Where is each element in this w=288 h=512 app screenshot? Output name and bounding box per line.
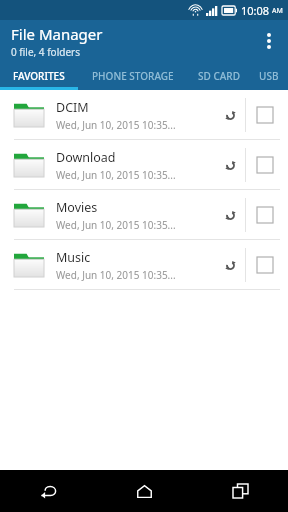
staticText: FAVORITES [13,69,65,83]
staticText: Wed, Jun 10, 2015 10:35... [56,118,176,132]
button[interactable]: Download [0,140,288,190]
staticText: 10:08 [241,3,270,18]
staticText: Wed, Jun 10, 2015 10:35... [56,268,176,282]
staticText: PHONE STORAGE [92,69,174,83]
button[interactable]: Music [0,240,288,290]
staticText: DCIM [56,99,89,116]
button[interactable]: Home [123,470,165,512]
staticText: AM [272,6,283,16]
staticText: Wed, Jun 10, 2015 10:35... [56,218,176,232]
button[interactable]: Sync [215,250,245,280]
staticText: Download [56,149,116,166]
button[interactable]: DCIM [0,90,288,140]
button[interactable]: Select Music [246,246,284,284]
button[interactable]: SD CARD [188,62,250,90]
button[interactable]: Recent apps [219,470,261,512]
staticText: Music [56,249,91,266]
button[interactable]: Select Movies [246,196,284,234]
button[interactable]: FAVORITES [0,62,78,90]
button[interactable]: Select Download [246,146,284,184]
button[interactable]: More options [250,22,288,60]
button[interactable]: Sync [215,150,245,180]
staticText: USB [259,69,279,83]
button[interactable]: Select DCIM [246,96,284,134]
button[interactable]: Sync [215,200,245,230]
button[interactable]: PHONE STORAGE [78,62,188,90]
button[interactable]: Movies [0,190,288,240]
button[interactable]: Sync [215,100,245,130]
staticText: Wed, Jun 10, 2015 10:35... [56,168,176,182]
staticText: File Manager [11,24,103,44]
staticText: 0 file, 4 folders [11,45,80,59]
button[interactable]: USB [250,62,288,90]
staticText: Movies [56,199,98,216]
staticText: SD CARD [198,69,240,83]
button[interactable]: Back [27,470,69,512]
